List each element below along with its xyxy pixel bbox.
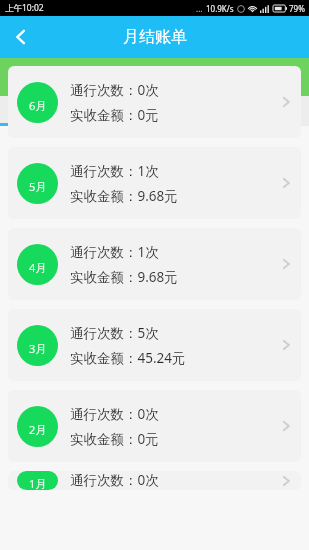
- button[interactable]: 3月: [8, 309, 301, 381]
- staticText: 实收金额：9.68元: [70, 187, 178, 205]
- staticText: 2月: [29, 422, 47, 437]
- staticText: 10.9K/s: [206, 3, 234, 14]
- staticText: 通行次数：0次: [70, 405, 159, 423]
- staticText: 通行次数：0次: [70, 471, 159, 489]
- staticText: 通行次数：1次: [70, 243, 159, 261]
- staticText: 1月: [29, 476, 47, 490]
- staticText: 通行次数：5次: [70, 324, 159, 342]
- staticText: 实收金额：45.24元: [70, 349, 186, 367]
- button[interactable]: 六个月成绩: [155, 96, 309, 123]
- button[interactable]: 5月: [8, 147, 301, 219]
- staticText: 3月: [29, 341, 47, 356]
- button[interactable]: 4月: [8, 228, 301, 300]
- staticText: 实收金额：0元: [70, 430, 159, 448]
- staticText: 通行次数：0次: [70, 81, 159, 99]
- staticText: 6月: [29, 98, 47, 113]
- staticText: 实收金额：0元: [70, 106, 159, 124]
- staticText: 4月: [29, 260, 47, 275]
- button[interactable]: Back: [0, 16, 42, 58]
- button[interactable]: 1月: [8, 471, 301, 490]
- staticText: 5月: [29, 179, 47, 194]
- button[interactable]: 6月: [8, 66, 301, 138]
- staticText: 月结账单: [123, 27, 187, 47]
- staticText: 上午10:02: [5, 2, 44, 14]
- staticText: 六个月账单: [45, 102, 110, 118]
- staticText: 通行次数：1次: [70, 162, 159, 180]
- staticText: 记帐卡：14152322****6156: [8, 68, 178, 86]
- staticText: ...: [196, 3, 203, 14]
- button[interactable]: 2月: [8, 390, 301, 462]
- staticText: 实收金额：9.68元: [70, 268, 178, 286]
- button[interactable]: 六个月账单: [0, 96, 154, 123]
- staticText: 79%: [289, 3, 305, 14]
